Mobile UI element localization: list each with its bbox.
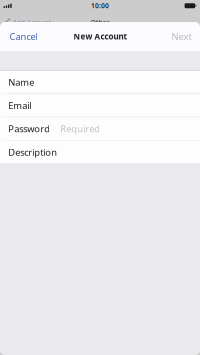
staticText: Email — [8, 99, 31, 112]
button[interactable]: Description — [0, 140, 200, 164]
staticText: Cancel — [9, 30, 37, 43]
staticText: Description — [8, 146, 57, 158]
button[interactable]: Cancel — [0, 24, 47, 48]
button[interactable]: Email — [0, 94, 200, 117]
staticText: 10:00 — [91, 1, 109, 10]
staticText: Password — [8, 122, 50, 135]
button[interactable]: Name — [0, 71, 200, 94]
button[interactable]: Password — [0, 117, 200, 140]
button[interactable]: Next — [163, 24, 200, 48]
staticText: Add Account — [13, 18, 51, 27]
staticText: Required — [60, 122, 100, 135]
staticText: New Account — [73, 31, 126, 42]
staticText: Other — [90, 18, 109, 27]
staticText: Next — [172, 30, 192, 43]
staticText: Name — [8, 76, 34, 88]
